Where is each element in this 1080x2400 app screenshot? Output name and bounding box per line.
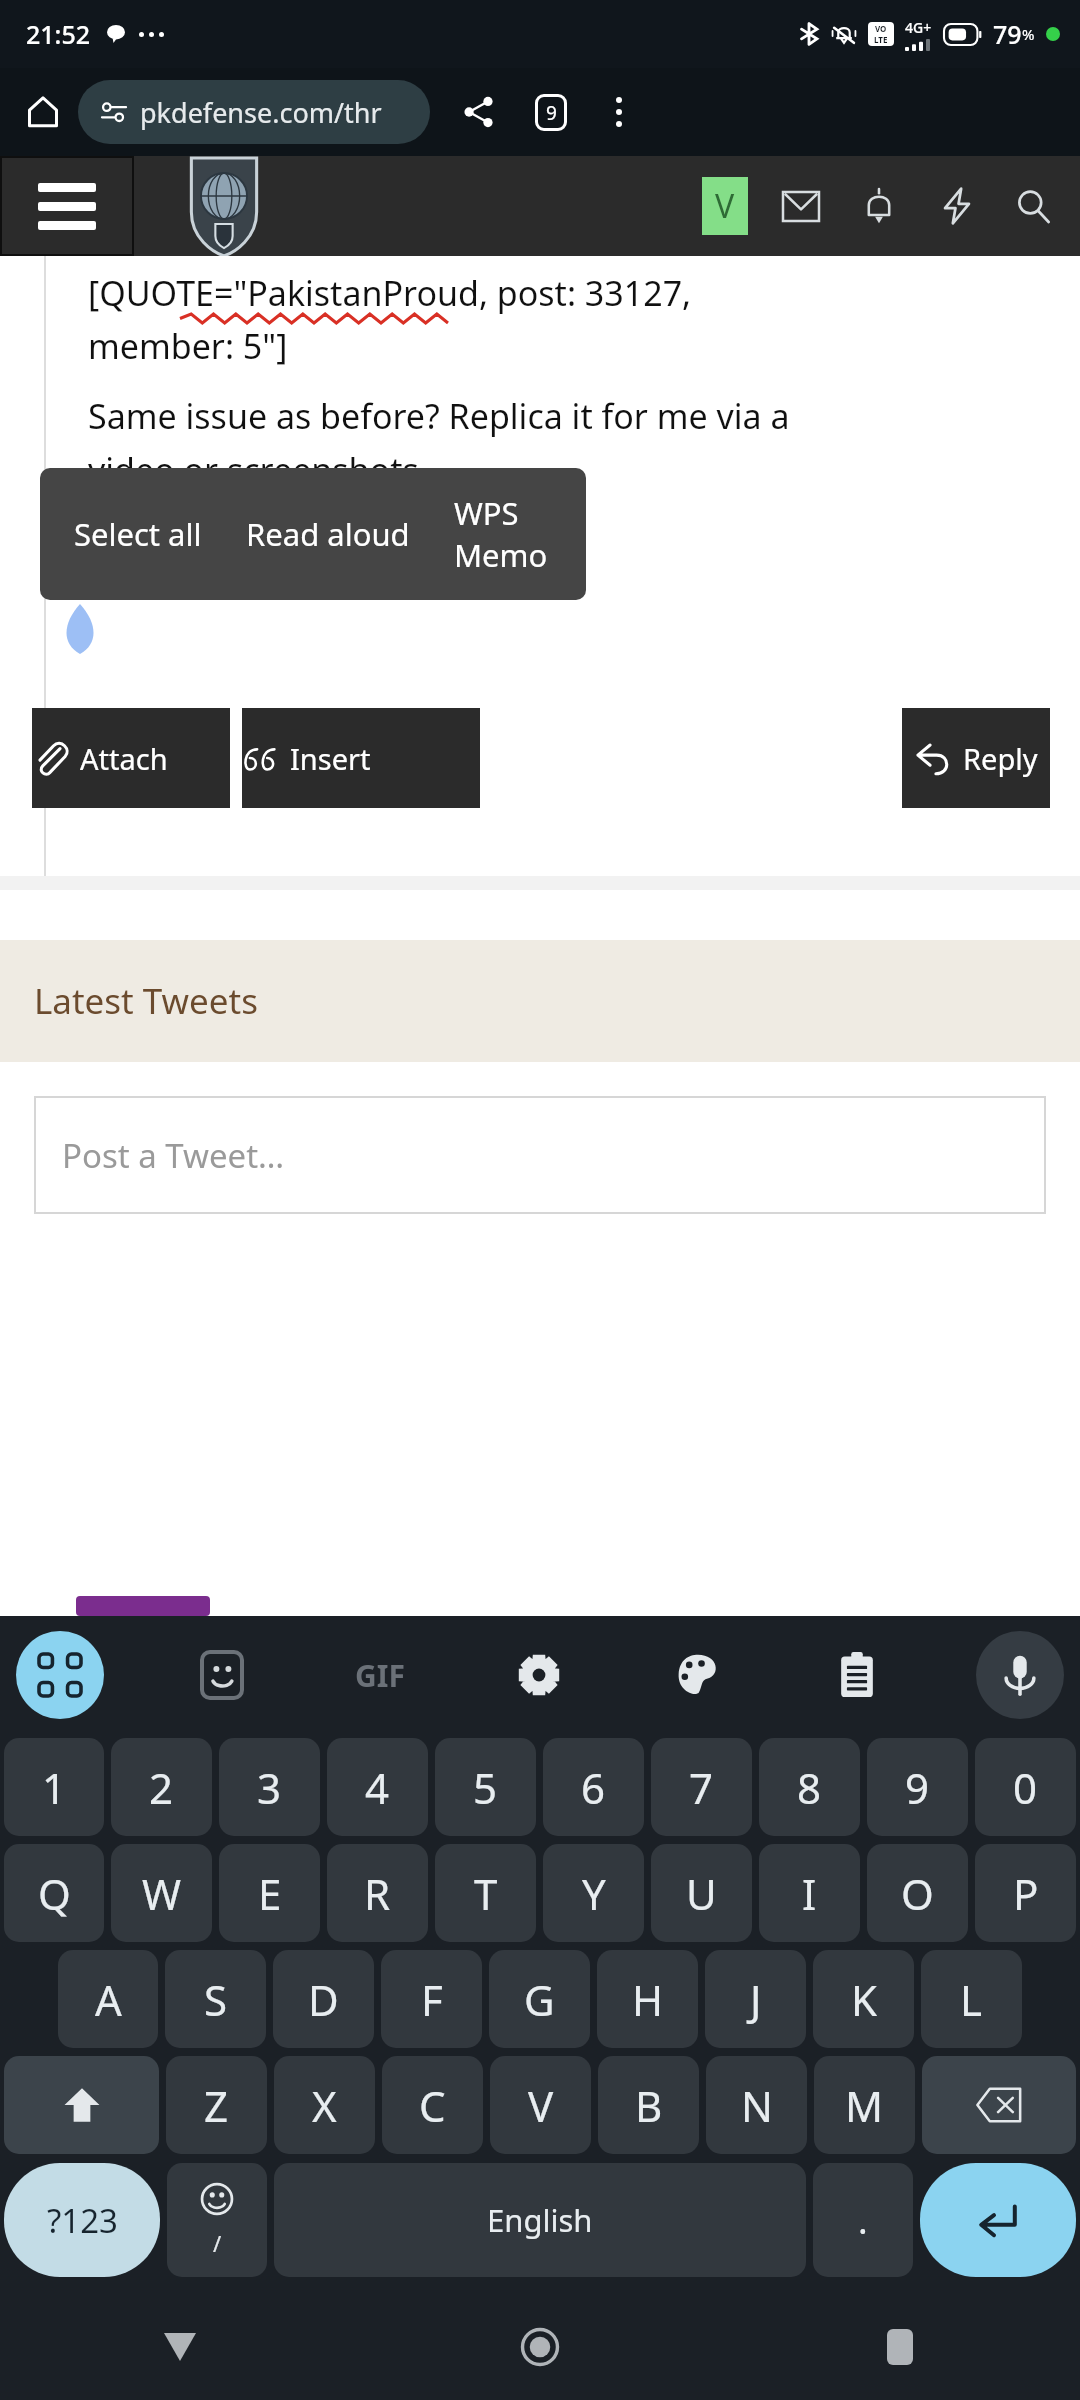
button[interactable]: Clipboard xyxy=(817,1635,897,1715)
button[interactable]: Stickers xyxy=(182,1635,262,1715)
button[interactable]: Menu xyxy=(0,156,134,256)
staticText: Read aloud xyxy=(246,513,410,555)
button[interactable]: 6 xyxy=(543,1738,644,1836)
button[interactable]: 9 xyxy=(867,1738,968,1836)
button[interactable]: X xyxy=(274,2056,375,2154)
button[interactable]: Z xyxy=(166,2056,267,2154)
button[interactable]: Q xyxy=(4,1844,104,1942)
button[interactable]: Recents xyxy=(720,2294,1080,2400)
button[interactable]: 8 xyxy=(759,1738,860,1836)
button[interactable]: Post a Tweet… xyxy=(34,1096,1046,1214)
button[interactable]: GIF xyxy=(340,1635,420,1715)
staticText: V xyxy=(528,2077,554,2134)
button[interactable]: 4 xyxy=(327,1738,428,1836)
button[interactable]: Enter xyxy=(920,2163,1076,2277)
staticText: pkdefense.com/thr xyxy=(140,94,382,131)
button[interactable]: Emoji xyxy=(167,2163,267,2277)
button[interactable]: pkdefense.com/thr xyxy=(78,80,430,144)
button[interactable]: V xyxy=(702,177,748,235)
button[interactable]: Settings xyxy=(499,1635,579,1715)
button[interactable]: English xyxy=(274,2163,806,2277)
button[interactable]: Select all xyxy=(52,468,224,600)
staticText: K xyxy=(851,1971,877,2028)
button[interactable]: N xyxy=(706,2056,807,2154)
button[interactable]: H xyxy=(597,1950,698,2048)
button[interactable]: Tabs xyxy=(522,83,580,141)
button[interactable]: Back xyxy=(0,2294,360,2400)
button[interactable]: 1 xyxy=(4,1738,104,1836)
button[interactable]: O xyxy=(867,1844,968,1942)
staticText: Q xyxy=(38,1865,71,1922)
button[interactable]: 7 xyxy=(651,1738,752,1836)
staticText: Attach files xyxy=(80,739,230,778)
button[interactable]: Read aloud xyxy=(224,468,432,600)
button[interactable]: E xyxy=(219,1844,320,1942)
staticText: N xyxy=(741,2077,773,2134)
button[interactable]: R xyxy=(327,1844,428,1942)
staticText: L xyxy=(960,1971,983,2028)
staticText: Z xyxy=(204,2077,229,2134)
button[interactable]: F xyxy=(381,1950,482,2048)
button[interactable]: 5 xyxy=(435,1738,536,1836)
button[interactable]: Insert quotes… xyxy=(242,708,480,808)
staticText: Select all xyxy=(74,513,202,555)
button[interactable]: P xyxy=(975,1844,1076,1942)
staticText: 8 xyxy=(797,1759,822,1816)
button[interactable]: Alerts xyxy=(854,181,904,231)
staticText: W xyxy=(142,1865,182,1922)
button[interactable]: C xyxy=(382,2056,483,2154)
staticText: English xyxy=(487,2199,593,2241)
button[interactable]: Voice input xyxy=(976,1631,1064,1719)
staticText: G xyxy=(524,1971,555,2028)
staticText: X xyxy=(312,2077,337,2134)
button[interactable]: ?123 xyxy=(4,2163,160,2277)
button[interactable]: Search xyxy=(1008,181,1058,231)
button[interactable]: J xyxy=(705,1950,806,2048)
staticText: U xyxy=(686,1865,717,1922)
button[interactable]: D xyxy=(273,1950,374,2048)
button[interactable]: . xyxy=(813,2163,913,2277)
button[interactable]: G xyxy=(489,1950,590,2048)
button[interactable]: M xyxy=(814,2056,915,2154)
button[interactable]: T xyxy=(435,1844,536,1942)
button[interactable]: Y xyxy=(543,1844,644,1942)
staticText: R xyxy=(364,1865,391,1922)
button[interactable]: K xyxy=(813,1950,914,2048)
staticText: S xyxy=(204,1971,228,2028)
button[interactable]: Shift xyxy=(4,2056,159,2154)
staticText: H xyxy=(632,1971,664,2028)
button[interactable]: L xyxy=(921,1950,1022,2048)
button[interactable]: W xyxy=(111,1844,212,1942)
button[interactable]: Home xyxy=(360,2294,720,2400)
staticText: E xyxy=(258,1865,282,1922)
button[interactable]: WPS Memo xyxy=(432,468,586,600)
button[interactable]: Home xyxy=(14,83,72,141)
button[interactable]: A xyxy=(58,1950,158,2048)
button[interactable]: Themes xyxy=(658,1635,738,1715)
staticText: I xyxy=(802,1865,817,1922)
button[interactable]: Backspace xyxy=(922,2056,1076,2154)
staticText: 3 xyxy=(257,1759,282,1816)
button[interactable]: I xyxy=(759,1844,860,1942)
staticText: M xyxy=(845,2077,884,2134)
button[interactable]: Attach files xyxy=(32,708,230,808)
button[interactable]: 0 xyxy=(975,1738,1076,1836)
button[interactable]: 2 xyxy=(111,1738,212,1836)
button[interactable]: B xyxy=(598,2056,699,2154)
button[interactable]: 3 xyxy=(219,1738,320,1836)
staticText: [QUOTE="PakistanProud, post: 33127, memb… xyxy=(88,270,692,369)
button[interactable]: V xyxy=(490,2056,591,2154)
button[interactable]: More options xyxy=(590,83,648,141)
button[interactable]: Share xyxy=(450,83,508,141)
button[interactable]: Inbox xyxy=(776,181,826,231)
button[interactable]: Toolbar xyxy=(16,1631,104,1719)
button[interactable]: U xyxy=(651,1844,752,1942)
staticText: ?123 xyxy=(47,2198,118,2243)
button[interactable]: What's new xyxy=(932,181,982,231)
staticText: 9 xyxy=(905,1759,930,1816)
button[interactable]: Reply xyxy=(902,708,1050,808)
button[interactable]: S xyxy=(165,1950,266,2048)
staticText: Y xyxy=(582,1865,606,1922)
staticText: % xyxy=(1022,24,1035,44)
staticText: J xyxy=(750,1971,762,2028)
